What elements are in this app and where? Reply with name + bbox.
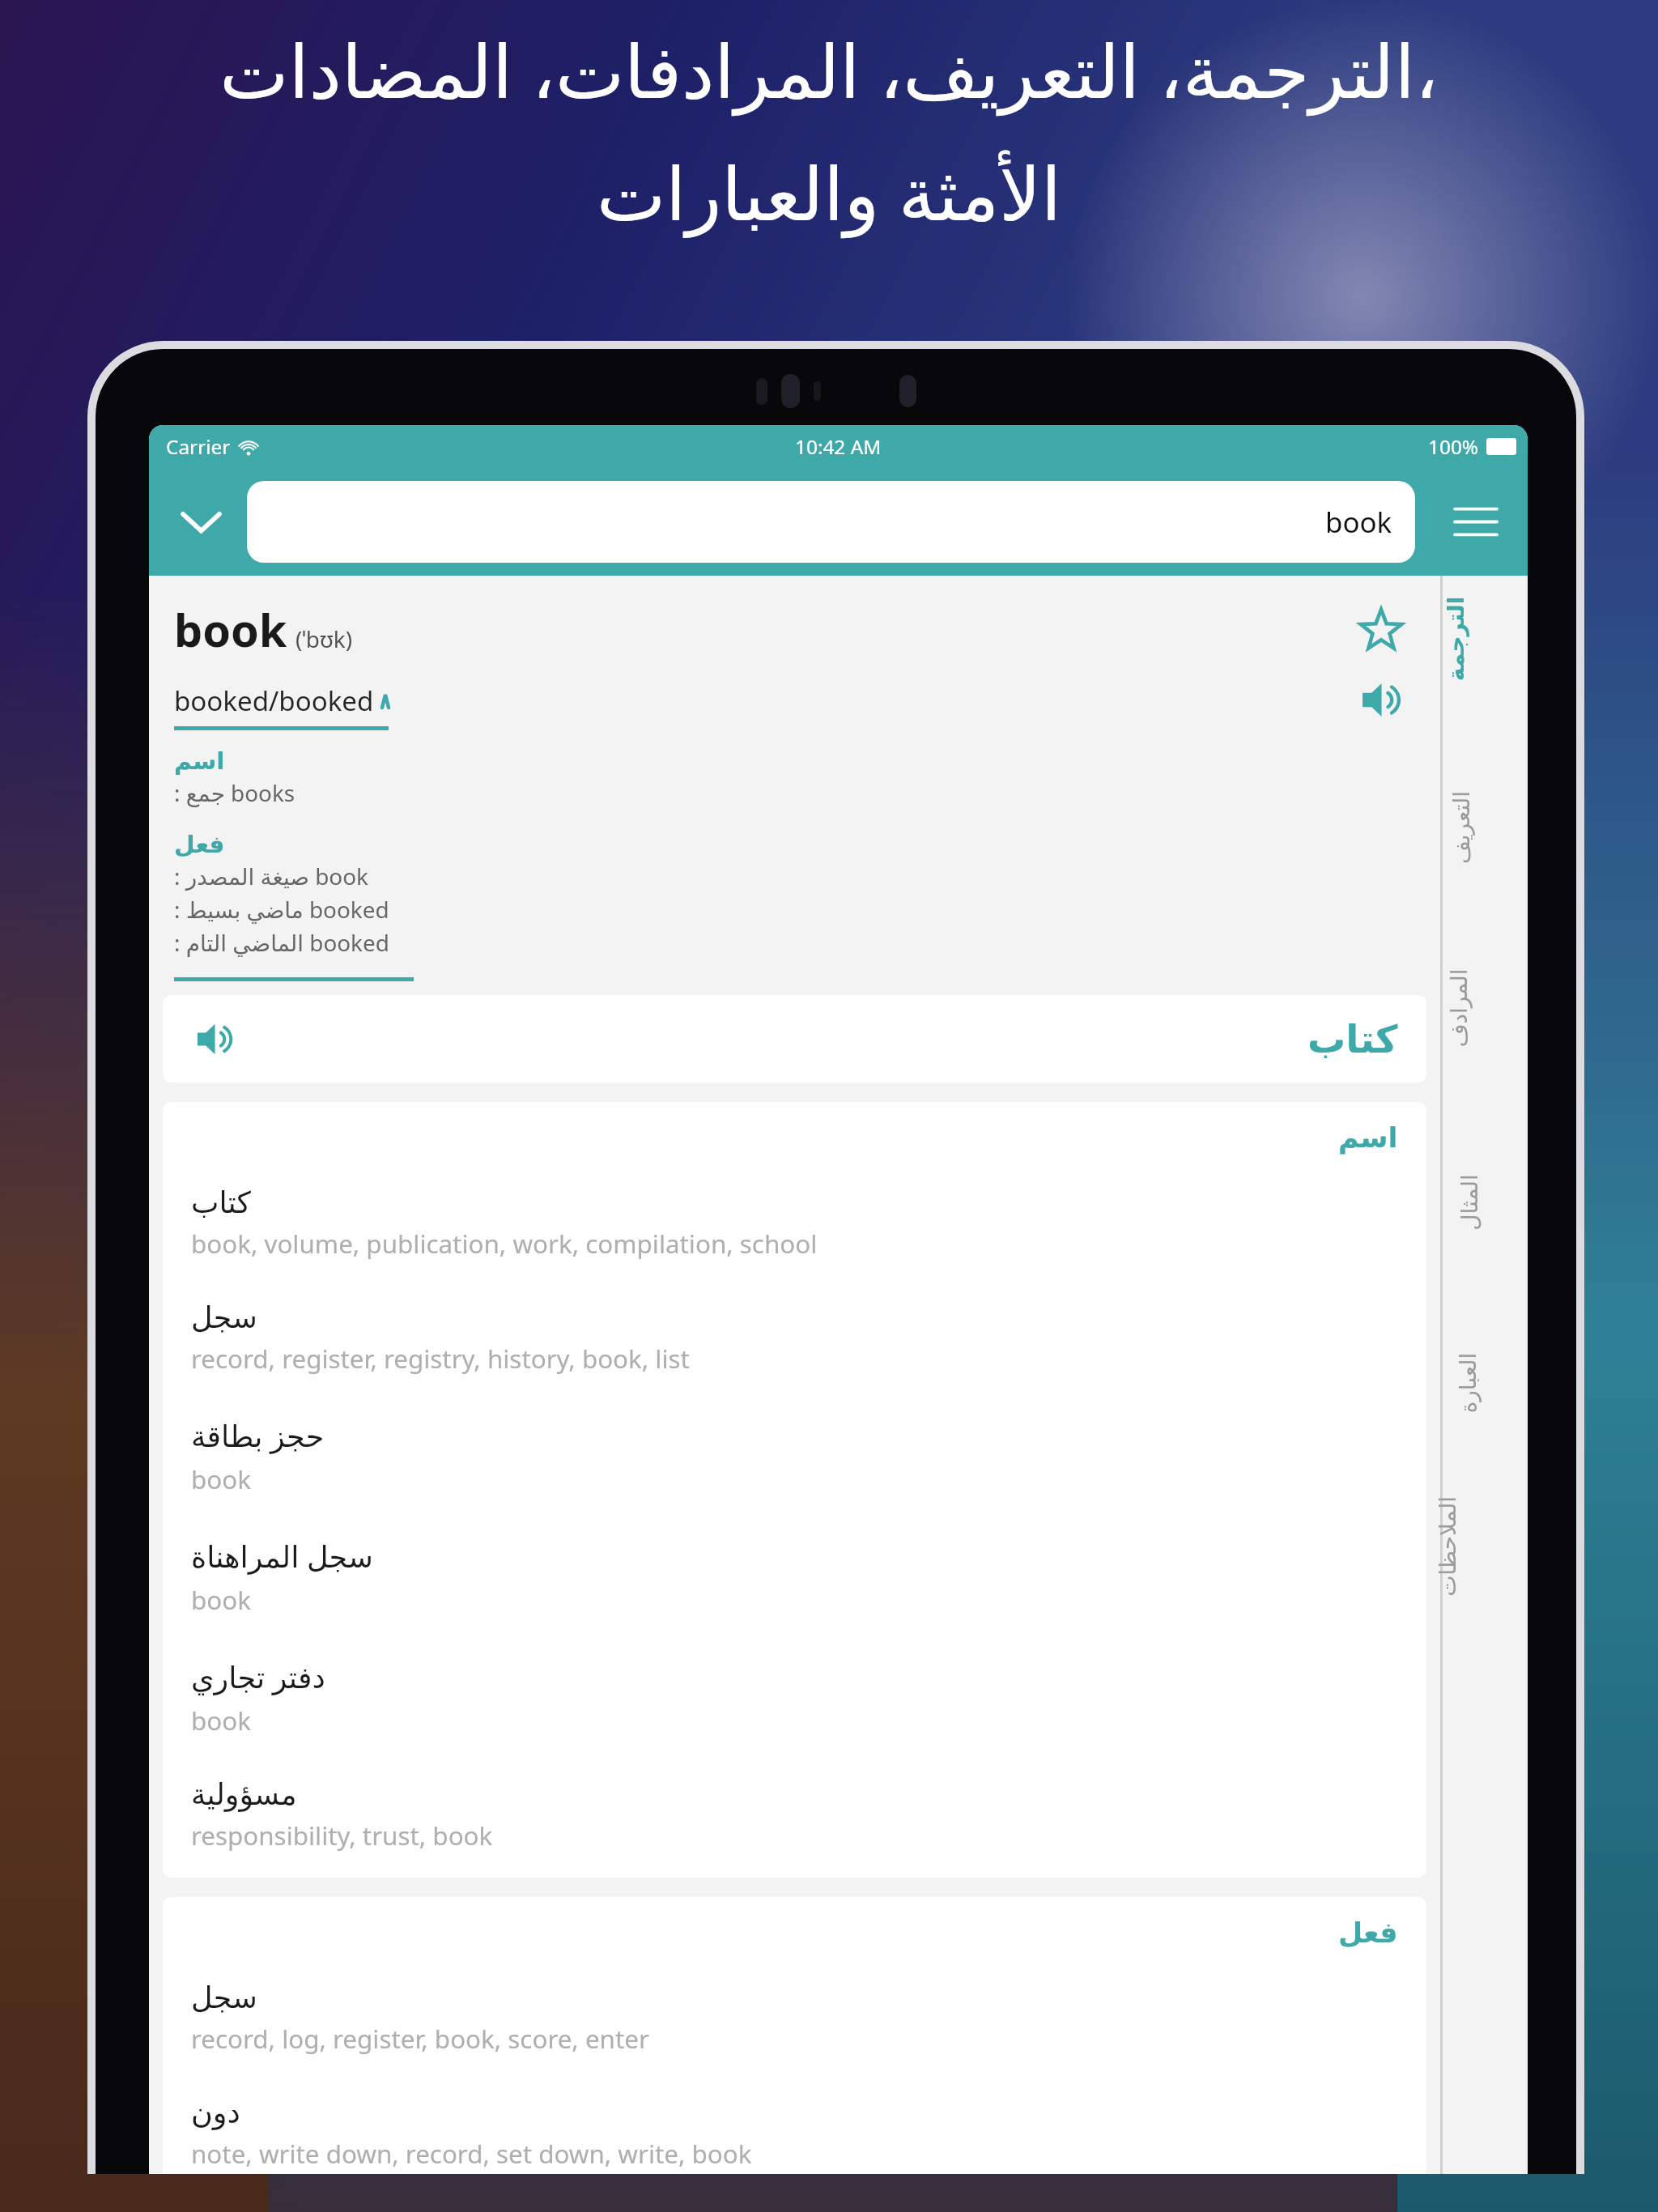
staticText: دفتر تجاري: [191, 1657, 325, 1697]
staticText: : ماضي بسيط booked: [174, 894, 389, 925]
staticText: المرادف: [1445, 969, 1471, 1047]
staticText: الأمثة والعبارات: [597, 142, 1061, 241]
staticText: كتاب: [191, 1185, 251, 1220]
staticText: book, volume, publication, work, compila…: [191, 1226, 818, 1261]
staticText: record, log, register, book, score, ente…: [191, 2021, 649, 2056]
staticText: دون: [191, 2095, 240, 2130]
button[interactable]: Favorite: [1353, 601, 1409, 657]
staticText: حجز بطاقة: [191, 1415, 325, 1456]
button[interactable]: Pronounce: [1353, 671, 1409, 728]
staticText: : جمع books: [174, 777, 295, 808]
button[interactable]: كتاب: [163, 995, 1426, 1083]
staticText: book: [1325, 503, 1392, 541]
staticText: الملاحظات: [1435, 1496, 1460, 1597]
button[interactable]: مسؤولية: [191, 1777, 1398, 1878]
button[interactable]: Pronounce: [191, 1015, 239, 1063]
staticText: book: [191, 1703, 251, 1738]
button[interactable]: دفتر تجاري: [191, 1657, 1398, 1777]
staticText: كتاب: [1307, 1017, 1398, 1061]
staticText: سجل: [191, 1980, 257, 2015]
staticText: سجل المراهناة: [191, 1536, 373, 1576]
staticText: الترجمة، التعريف، المرادفات، المضادات،: [219, 19, 1439, 119]
staticText: العبارة: [1454, 1353, 1480, 1413]
button[interactable]: booked/booked: [174, 683, 389, 719]
staticText: اسم: [1338, 1121, 1398, 1155]
staticText: 100%: [1428, 433, 1479, 460]
staticText: note, write down, record, set down, writ…: [191, 2136, 752, 2171]
staticText: الترجمة: [1442, 596, 1468, 681]
button[interactable]: دون: [191, 2095, 1398, 2174]
staticText: مسؤولية: [191, 1777, 297, 1812]
staticText: فعل: [174, 831, 225, 858]
staticText: المثال: [1456, 1174, 1482, 1231]
button[interactable]: كتاب: [191, 1185, 1398, 1300]
staticText: : الماضي التام booked: [174, 927, 389, 958]
staticText: سجل: [191, 1300, 257, 1335]
button[interactable]: حجز بطاقة: [191, 1415, 1398, 1536]
staticText: اسم: [174, 747, 225, 775]
staticText: booked/booked: [174, 683, 374, 719]
button[interactable]: book: [247, 481, 1415, 563]
staticText: (ˈbʊk): [295, 623, 353, 654]
button[interactable]: سجل: [191, 1980, 1398, 2095]
button[interactable]: Menu: [1438, 483, 1514, 559]
button[interactable]: المثال: [1443, 1150, 1525, 1285]
staticText: book: [191, 1461, 251, 1496]
staticText: Carrier: [166, 433, 231, 460]
staticText: : صيغة المصدر book: [174, 861, 368, 891]
staticText: 10:42 AM: [795, 433, 882, 460]
staticText: responsibility, trust, book: [191, 1818, 493, 1853]
button[interactable]: المرادف: [1443, 967, 1525, 1102]
button[interactable]: العبارة: [1443, 1333, 1525, 1468]
button[interactable]: الترجمة: [1443, 601, 1525, 736]
button[interactable]: سجل المراهناة: [191, 1536, 1398, 1657]
button[interactable]: سجل: [191, 1300, 1398, 1415]
button[interactable]: التعريف: [1443, 784, 1525, 919]
button[interactable]: الملاحظات: [1443, 1516, 1525, 1651]
staticText: book: [191, 1582, 251, 1617]
staticText: record, register, registry, history, boo…: [191, 1341, 690, 1376]
button[interactable]: Collapse: [163, 483, 239, 559]
staticText: التعريف: [1448, 791, 1474, 864]
staticText: book: [174, 598, 287, 660]
staticText: فعل: [1338, 1916, 1398, 1950]
